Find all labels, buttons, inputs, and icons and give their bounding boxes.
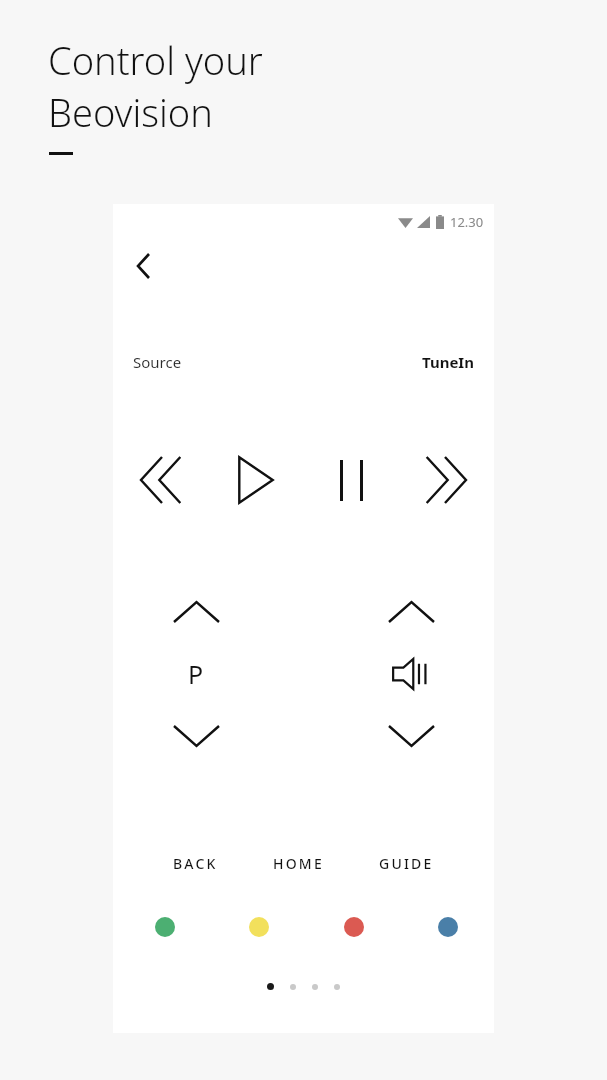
button[interactable]: Blue: [428, 907, 468, 947]
staticText: 12.30: [450, 213, 484, 231]
button[interactable]: P: [170, 652, 222, 696]
button[interactable]: HOME: [269, 848, 328, 879]
button[interactable]: Red: [334, 907, 374, 947]
staticText: Source: [133, 352, 182, 372]
button[interactable]: Source: [113, 342, 494, 382]
button[interactable]: BACK: [169, 848, 222, 879]
button[interactable]: Volume up: [380, 592, 442, 632]
button[interactable]: Next: [420, 454, 472, 506]
staticText: Beovision: [48, 86, 213, 138]
staticText: TuneIn: [422, 352, 474, 372]
button[interactable]: Green: [145, 907, 185, 947]
button[interactable]: Programme down: [165, 716, 227, 756]
button[interactable]: Volume: [385, 652, 437, 696]
button[interactable]: Previous: [135, 454, 187, 506]
button[interactable]: Yellow: [239, 907, 279, 947]
staticText: BACK: [173, 854, 218, 873]
button[interactable]: GUIDE: [375, 848, 438, 879]
button[interactable]: Play: [230, 454, 282, 506]
staticText: HOME: [273, 854, 324, 873]
button[interactable]: Back: [121, 244, 165, 288]
staticText: GUIDE: [379, 854, 434, 873]
staticText: Control your: [48, 34, 263, 86]
staticText: P: [188, 657, 204, 691]
button[interactable]: Pause: [325, 454, 377, 506]
button[interactable]: Volume down: [380, 716, 442, 756]
button[interactable]: Programme up: [165, 592, 227, 632]
